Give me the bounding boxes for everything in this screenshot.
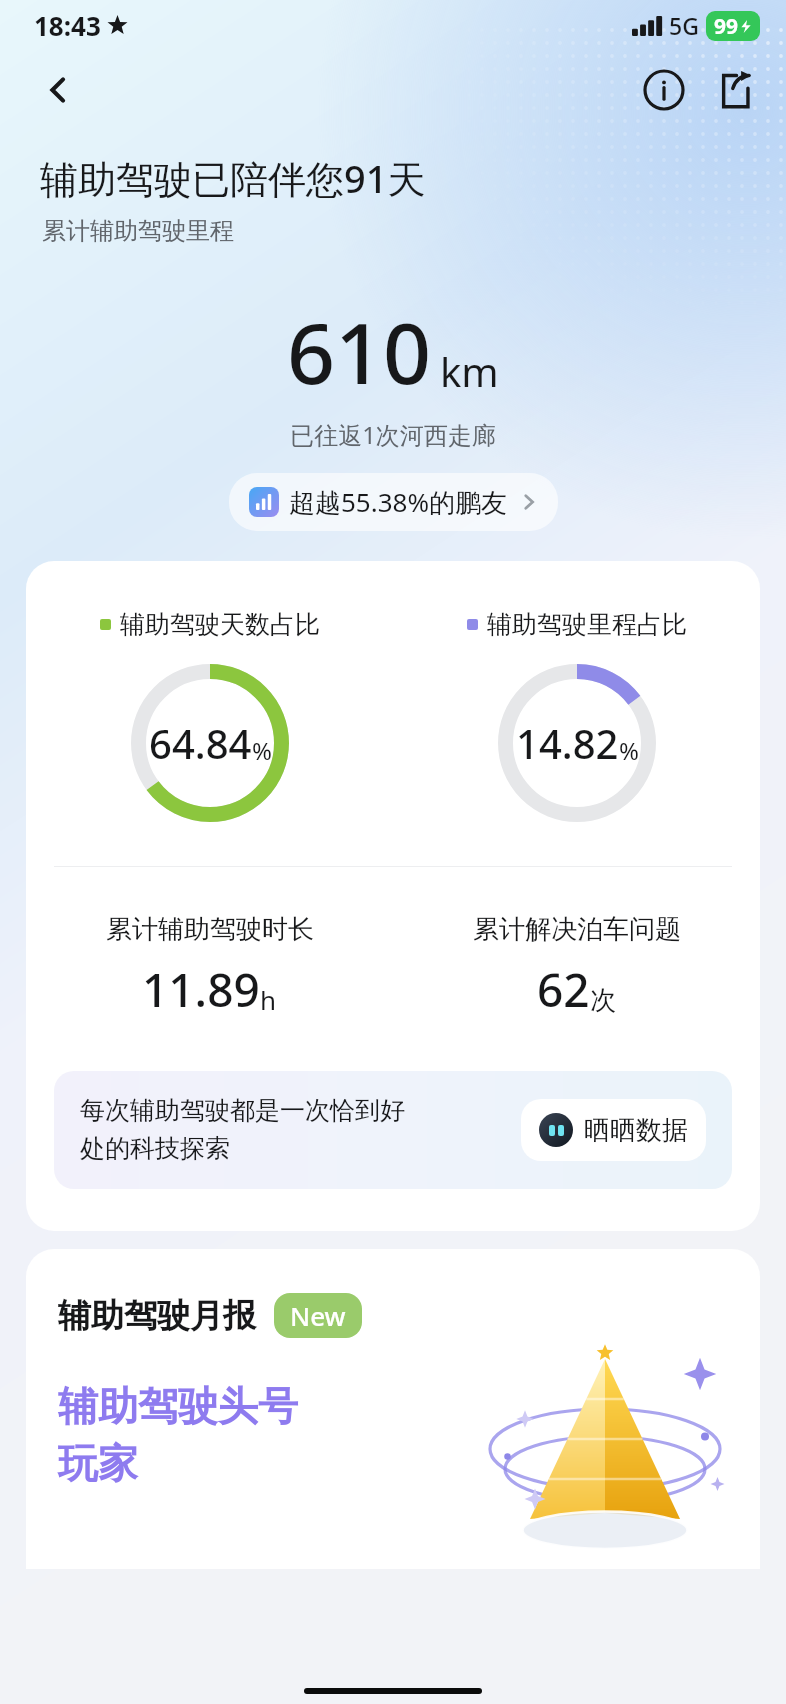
staticText: 610 — [287, 294, 432, 408]
staticText: 已往返1次河西走廊 — [0, 418, 786, 451]
staticText: 5G — [669, 10, 699, 41]
staticText: 辅助驾驶里程占比 — [487, 609, 687, 640]
staticText: 累计辅助驾驶时长 — [106, 913, 314, 946]
staticText: 累计辅助驾驶里程 — [42, 216, 234, 246]
staticText: % — [619, 734, 639, 767]
staticText: % — [252, 734, 272, 767]
staticText: 11.89 — [142, 958, 260, 1021]
button[interactable]: Back — [34, 66, 82, 114]
staticText: 超越55.38%的鹏友 — [289, 484, 508, 520]
button[interactable]: 晒晒数据 — [521, 1099, 706, 1161]
staticText: 18:43 — [34, 8, 101, 43]
staticText: 辅助驾驶月报 — [58, 1295, 256, 1337]
staticText: 14.82 — [516, 716, 619, 770]
button[interactable]: 辅助驾驶月报 — [26, 1249, 760, 1569]
staticText: New — [290, 1298, 346, 1333]
staticText: km — [440, 344, 499, 398]
staticText: 辅助驾驶已陪伴您91天 — [40, 152, 426, 204]
staticText: h — [260, 982, 277, 1017]
staticText: 辅助驾驶头号 玩家 — [58, 1381, 299, 1489]
staticText: 每次辅助驾驶都是一次恰到好 处的科技探索 — [80, 1095, 521, 1165]
staticText: 99 — [714, 12, 739, 41]
staticText: 辅助驾驶天数占比 — [120, 609, 320, 640]
button[interactable]: 超越55.38%的鹏友 — [229, 473, 558, 531]
staticText: 62 — [537, 958, 590, 1021]
staticText: 累计解决泊车问题 — [473, 913, 681, 946]
staticText: 晒晒数据 — [584, 1114, 688, 1147]
staticText: 64.84 — [149, 716, 252, 770]
button[interactable]: Share — [704, 62, 760, 118]
button[interactable]: Info — [636, 62, 692, 118]
staticText: 次 — [590, 984, 616, 1017]
